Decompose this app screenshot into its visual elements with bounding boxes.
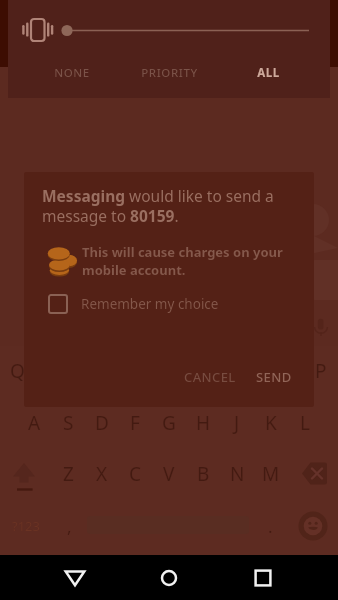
staticText: Messaging would like to send a message t… (42, 185, 304, 227)
staticText: C (129, 461, 142, 487)
button[interactable]: Backspace (298, 457, 332, 491)
button[interactable]: X (85, 454, 119, 494)
button[interactable]: F (118, 403, 152, 443)
button[interactable]: L (288, 403, 322, 443)
button[interactable]: H (186, 403, 220, 443)
button[interactable]: Ringer mode: vibrate (14, 11, 61, 49)
staticText: M (262, 461, 280, 487)
staticText: P (315, 358, 327, 384)
button[interactable]: M (254, 454, 288, 494)
button[interactable]: I (237, 351, 271, 391)
staticText: Q (10, 358, 25, 384)
staticText: D (95, 410, 109, 436)
staticText: G (162, 410, 176, 436)
button[interactable]: A (17, 403, 51, 443)
staticText: ?123 (12, 517, 40, 535)
button[interactable]: O (271, 351, 305, 391)
staticText: . (268, 515, 273, 538)
staticText: SEND (256, 368, 292, 386)
button[interactable]: Back (51, 555, 99, 600)
button[interactable]: Q (0, 351, 34, 391)
staticText: Remember my choice (81, 295, 219, 313)
button[interactable]: N (220, 454, 254, 494)
button[interactable]: Home (145, 555, 193, 600)
button[interactable]: Emoji (296, 509, 330, 543)
staticText: B (197, 461, 210, 487)
button[interactable]: Recent apps (239, 555, 287, 600)
button[interactable]: S (51, 403, 85, 443)
staticText: Y (181, 358, 192, 384)
staticText: N (230, 461, 245, 487)
staticText: K (265, 410, 277, 436)
staticText: A (28, 410, 41, 436)
staticText: L (300, 410, 310, 436)
button[interactable]: CANCEL (176, 362, 244, 392)
button[interactable]: K (254, 403, 288, 443)
button[interactable]: J (220, 403, 254, 443)
staticText: F (130, 410, 140, 436)
staticText: PRIORITY (141, 65, 198, 81)
staticText: I (251, 358, 258, 384)
staticText: S (63, 410, 74, 436)
staticText: This will cause charges on your mobile a… (82, 243, 314, 279)
button[interactable]: B (186, 454, 220, 494)
staticText: U (213, 358, 227, 384)
button[interactable]: D (85, 403, 119, 443)
button[interactable]: C (118, 454, 152, 494)
button[interactable]: U (203, 351, 237, 391)
button[interactable]: ALL (224, 60, 312, 86)
staticText: J (234, 410, 240, 436)
staticText: NONE (54, 65, 90, 81)
button[interactable]: Remember my choice (46, 288, 266, 320)
button[interactable]: Z (51, 454, 85, 494)
button[interactable]: Shift (7, 457, 41, 491)
button[interactable]: PRIORITY (125, 60, 213, 86)
button[interactable]: P (304, 351, 338, 391)
staticText: X (96, 461, 108, 487)
staticText: V (163, 461, 175, 487)
staticText: , (67, 515, 72, 538)
staticText: CANCEL (184, 368, 236, 386)
staticText: O (281, 358, 296, 384)
button[interactable]: Y (169, 351, 203, 391)
staticText: ALL (257, 65, 280, 81)
staticText: H (196, 410, 211, 436)
button[interactable]: V (152, 454, 186, 494)
button[interactable]: NONE (28, 60, 116, 86)
button[interactable]: G (152, 403, 186, 443)
button[interactable]: SEND (246, 362, 302, 392)
staticText: Z (63, 461, 74, 487)
